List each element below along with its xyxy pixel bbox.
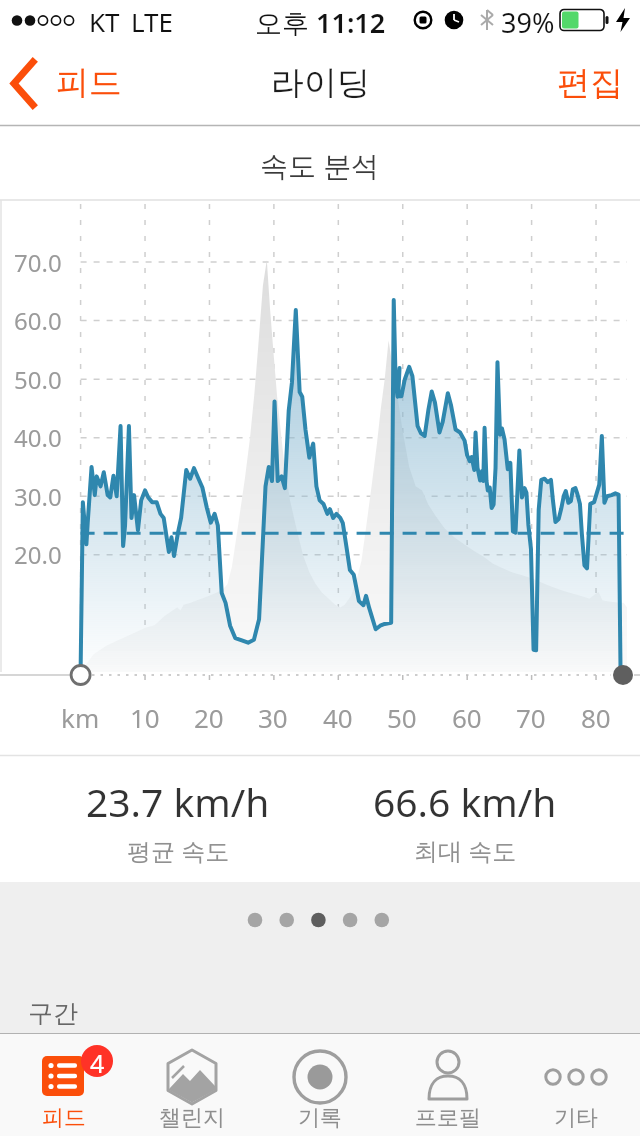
staticText: 23.7 km/h [86, 775, 270, 825]
staticText: 피드 [56, 62, 122, 104]
staticText: 40 [323, 700, 353, 732]
staticText: 39% [501, 4, 555, 36]
staticText: 평균 속도 [127, 834, 230, 864]
staticText: 50 [387, 700, 417, 732]
staticText: 구간 [28, 998, 78, 1028]
staticText: 챌린지 [159, 1104, 225, 1132]
staticText: LTE [131, 4, 174, 36]
button[interactable]: 기타 [512, 1034, 640, 1136]
staticText: 70 [516, 700, 546, 732]
staticText: 60 [452, 700, 482, 732]
button[interactable]: 기록 [256, 1034, 384, 1136]
staticText: 오후 11:12 [255, 4, 386, 36]
staticText: 40.0 [14, 421, 62, 453]
button[interactable]: 피드 [0, 1034, 128, 1136]
button[interactable]: 챌린지 [128, 1034, 256, 1136]
staticText: 프로필 [415, 1104, 481, 1132]
staticText: 60.0 [14, 304, 62, 336]
button[interactable]: 편집 [545, 48, 635, 118]
button[interactable]: 프로필 [384, 1034, 512, 1136]
staticText: 70.0 [14, 246, 62, 278]
staticText: 최대 속도 [414, 834, 517, 864]
staticText: 기록 [298, 1104, 342, 1132]
staticText: 50.0 [14, 363, 62, 395]
staticText: km [61, 700, 100, 732]
staticText: 20 [194, 700, 224, 732]
staticText: 피드 [42, 1104, 86, 1132]
staticText: 66.6 km/h [373, 775, 557, 825]
button[interactable]: 피드 [0, 48, 122, 118]
staticText: 라이딩 [271, 62, 370, 104]
staticText: 기타 [554, 1104, 598, 1132]
staticText: KT [89, 4, 120, 36]
staticText: 30 [258, 700, 288, 732]
staticText: 20.0 [14, 538, 62, 570]
staticText: 30.0 [14, 480, 62, 512]
staticText: 편집 [557, 62, 623, 104]
staticText: 속도 분석 [260, 146, 380, 184]
staticText: 10 [130, 700, 160, 732]
staticText: 80 [581, 700, 611, 732]
staticText: 4 [90, 1046, 105, 1076]
